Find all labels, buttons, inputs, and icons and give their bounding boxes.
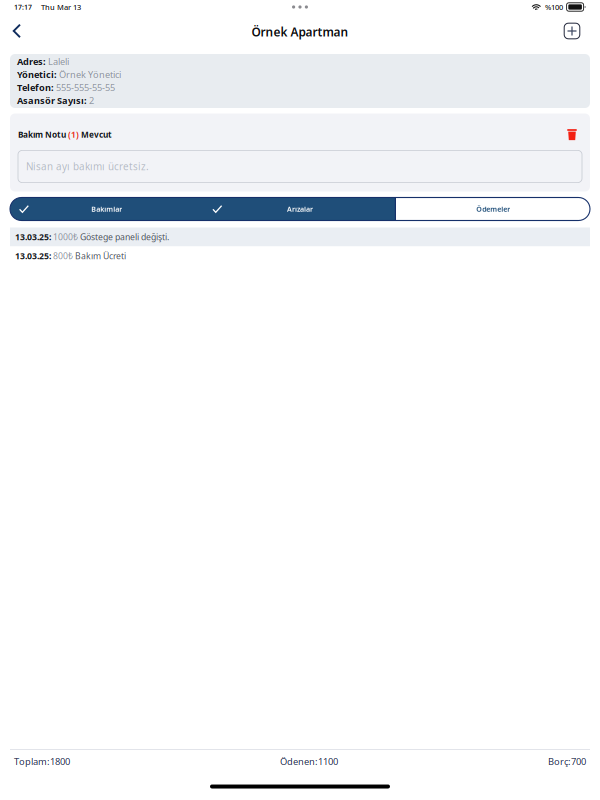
- button[interactable]: Ödemeler: [397, 197, 590, 220]
- button[interactable]: 13.03.25:: [10, 227, 590, 246]
- staticText: Bakım Notu: [18, 129, 68, 140]
- staticText: Göstege paneli değişti.: [80, 231, 169, 243]
- staticText: 13.03.25:: [15, 250, 51, 262]
- staticText: Thu Mar 13: [41, 2, 81, 12]
- button[interactable]: Arızalar: [203, 197, 397, 220]
- staticText: Telefon:: [17, 81, 54, 94]
- staticText: 555-555-55-55: [54, 81, 115, 94]
- staticText: 1000₺: [51, 231, 80, 243]
- staticText: Bakımlar: [91, 204, 122, 214]
- staticText: Laleli: [46, 55, 69, 68]
- staticText: 17:17: [14, 2, 32, 12]
- staticText: Yönetici:: [17, 68, 57, 81]
- button[interactable]: Delete maintenance note: [562, 125, 582, 143]
- staticText: (1): [68, 129, 79, 140]
- button[interactable]: 13.03.25:: [10, 246, 590, 265]
- staticText: Ödemeler: [476, 204, 510, 214]
- button[interactable]: Bakımlar: [10, 197, 203, 220]
- staticText: Borç:700: [548, 755, 586, 768]
- staticText: Arızalar: [287, 204, 313, 214]
- staticText: 800₺: [51, 250, 75, 262]
- staticText: 2: [87, 94, 94, 107]
- staticText: Ödenen:1100: [280, 755, 338, 768]
- button[interactable]: Add: [558, 15, 586, 45]
- staticText: Nisan ayı bakımı ücretsiz.: [26, 160, 149, 173]
- staticText: Örnek Apartman: [251, 24, 348, 40]
- staticText: %100: [545, 2, 563, 12]
- staticText: Asansör Sayısı:: [17, 94, 87, 107]
- staticText: Mevcut: [79, 129, 112, 140]
- button[interactable]: Back: [3, 15, 31, 45]
- staticText: Bakım Ücreti: [75, 250, 126, 262]
- staticText: Örnek Yönetici: [57, 68, 121, 81]
- staticText: Toplam:1800: [14, 755, 70, 768]
- staticText: Adres:: [17, 55, 46, 68]
- staticText: 13.03.25:: [15, 231, 51, 243]
